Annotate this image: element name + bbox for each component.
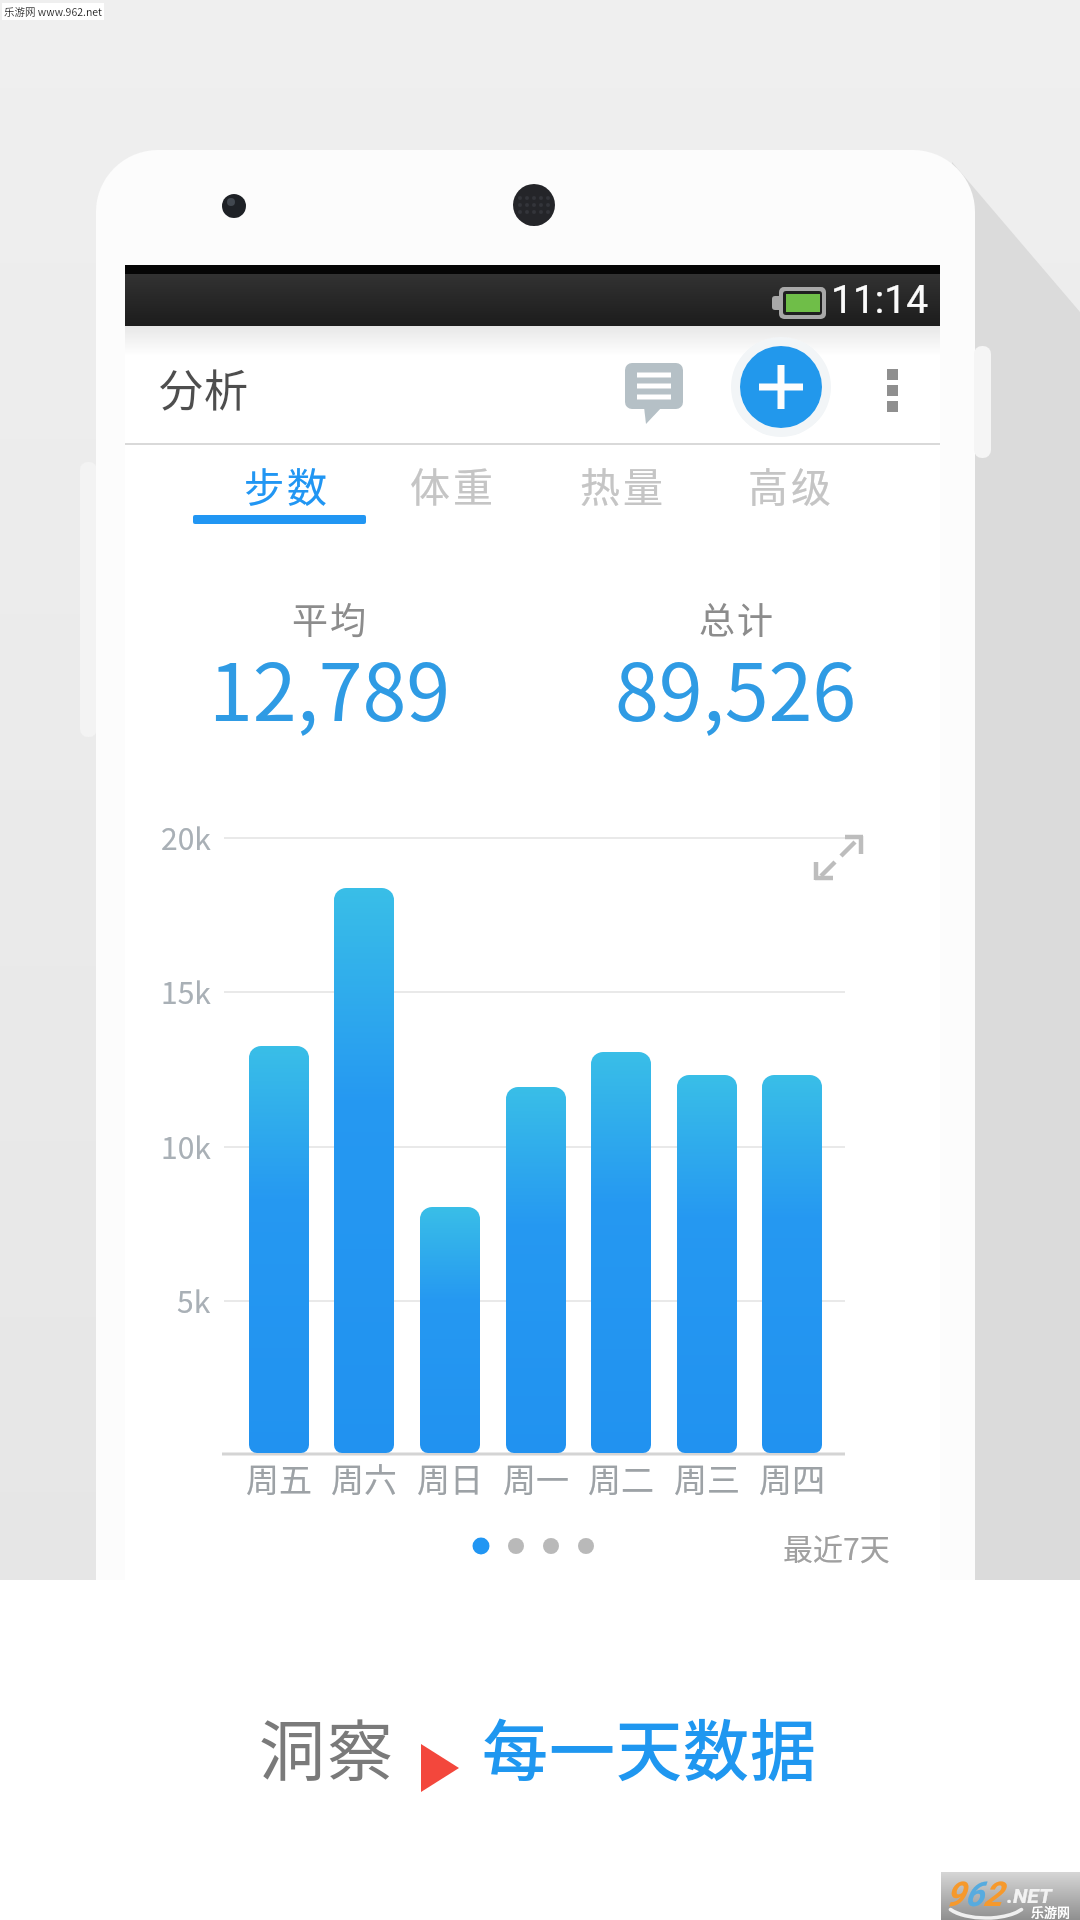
staticText: 周一 [503, 1454, 569, 1502]
staticText: 12,789 [209, 629, 451, 743]
staticText: 乐游网 www.962.net [4, 4, 103, 19]
button[interactable]: 洞察 [248, 1696, 828, 1796]
staticText: 总计 [699, 592, 776, 644]
staticText: 周六 [331, 1454, 397, 1502]
staticText: 周四 [759, 1454, 825, 1502]
staticText: 15k [161, 969, 211, 1012]
staticText: 洞察 [259, 1698, 395, 1794]
staticText: 周二 [588, 1454, 654, 1502]
button[interactable]: 高级 [708, 446, 874, 524]
staticText: 10k [161, 1124, 211, 1167]
staticText: 20k [161, 815, 211, 858]
staticText: 周三 [674, 1454, 740, 1502]
button[interactable] [740, 346, 822, 428]
staticText: 5k [177, 1278, 211, 1321]
staticText: 步数 [244, 456, 330, 514]
button[interactable]: 步数 [204, 446, 370, 524]
staticText: 乐游网 [1031, 1902, 1071, 1920]
button[interactable]: 体重 [370, 446, 536, 524]
staticText: 周日 [417, 1454, 483, 1502]
staticText: 周五 [246, 1454, 312, 1502]
staticText: 89,526 [615, 629, 857, 743]
staticText: .NET [1007, 1884, 1052, 1909]
staticText: 962 [946, 1874, 1003, 1914]
staticText: 高级 [748, 456, 834, 514]
staticText: 体重 [410, 456, 496, 514]
button[interactable] [806, 826, 870, 890]
staticText: 分析 [159, 356, 249, 420]
staticText: 平均 [292, 592, 369, 644]
staticText: 11:14 [831, 277, 929, 323]
staticText: 每一天数据 [482, 1698, 817, 1794]
button[interactable] [868, 352, 920, 424]
button[interactable]: 热量 [540, 446, 706, 524]
button[interactable] [605, 345, 705, 437]
staticText: 最近7天 [783, 1525, 890, 1568]
staticText: 热量 [580, 456, 666, 514]
button[interactable] [460, 1525, 610, 1569]
